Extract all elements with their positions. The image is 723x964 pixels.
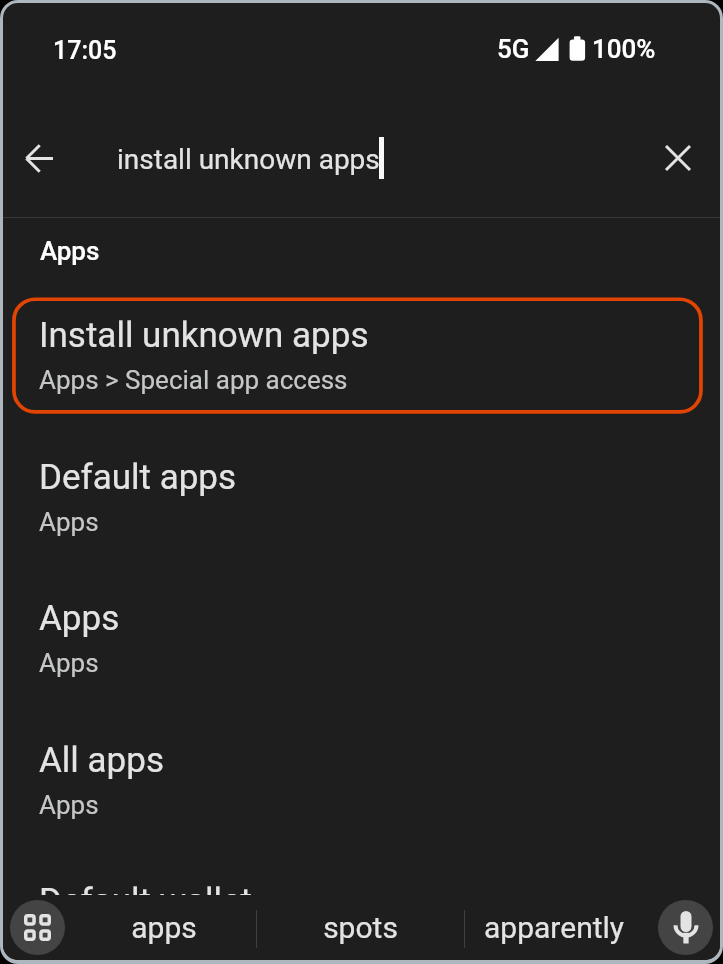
staticText: Apps — [39, 598, 120, 639]
staticText: Apps — [39, 507, 99, 537]
staticText: Default apps — [39, 457, 237, 498]
button[interactable]: Default apps — [13, 440, 705, 581]
button[interactable]: Clear search — [646, 126, 710, 190]
staticText: Install unknown apps — [39, 315, 369, 356]
staticText: install unknown apps — [117, 143, 380, 176]
button[interactable]: Apps — [13, 581, 705, 722]
staticText: 5G — [497, 34, 530, 64]
staticText: Apps > Special app access — [39, 365, 348, 395]
staticText: 100% — [592, 34, 656, 64]
staticText: Default wallet — [39, 881, 253, 922]
button[interactable]: Apps — [40, 236, 100, 266]
staticText: Apps — [39, 648, 99, 678]
button[interactable]: apparently — [462, 895, 646, 960]
staticText: Apps — [39, 931, 99, 960]
staticText: apps — [131, 910, 197, 945]
button[interactable]: Install unknown apps — [13, 298, 705, 439]
button[interactable]: Voice input — [658, 900, 713, 955]
button[interactable]: Default wallet — [13, 864, 705, 960]
staticText: apparently — [484, 910, 624, 945]
button[interactable]: All apps — [13, 723, 705, 864]
staticText: All apps — [39, 740, 164, 781]
button[interactable]: spots — [257, 895, 464, 960]
staticText: Apps — [39, 790, 99, 820]
button[interactable]: apps — [69, 895, 259, 960]
button[interactable]: Navigate up — [7, 126, 71, 190]
button[interactable]: Open keyboard toolbar — [10, 900, 65, 955]
staticText: 17:05 — [53, 36, 117, 65]
staticText: spots — [323, 910, 398, 945]
